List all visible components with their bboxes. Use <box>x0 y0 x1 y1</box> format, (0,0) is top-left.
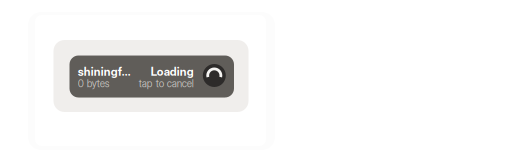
staticText: 0 bytes <box>78 77 110 90</box>
button[interactable]: shiningf... <box>69 55 234 97</box>
staticText: shiningf... <box>78 65 131 78</box>
staticText: tap to cancel <box>139 77 194 90</box>
staticText: Loading <box>151 65 194 78</box>
